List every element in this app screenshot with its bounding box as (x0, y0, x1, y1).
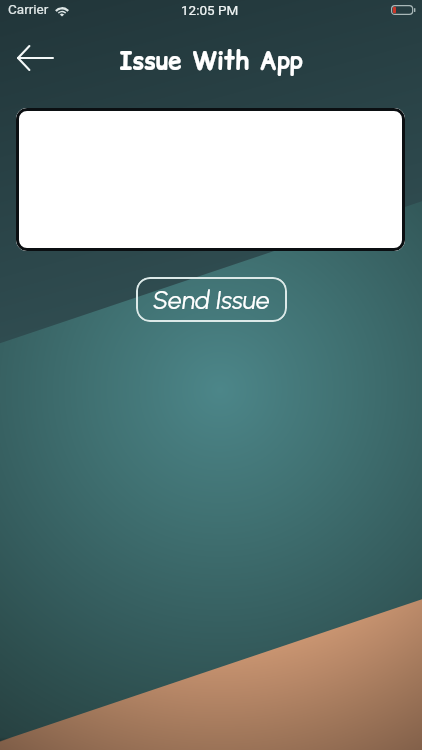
button[interactable] (16, 108, 405, 251)
button[interactable]: Send Issue (136, 277, 287, 322)
staticText: Issue With App (119, 44, 303, 77)
staticText: 12:05 PM (181, 2, 239, 18)
staticText: Send Issue (153, 285, 270, 315)
staticText: Carrier (8, 1, 49, 17)
button[interactable]: Back (17, 34, 63, 82)
